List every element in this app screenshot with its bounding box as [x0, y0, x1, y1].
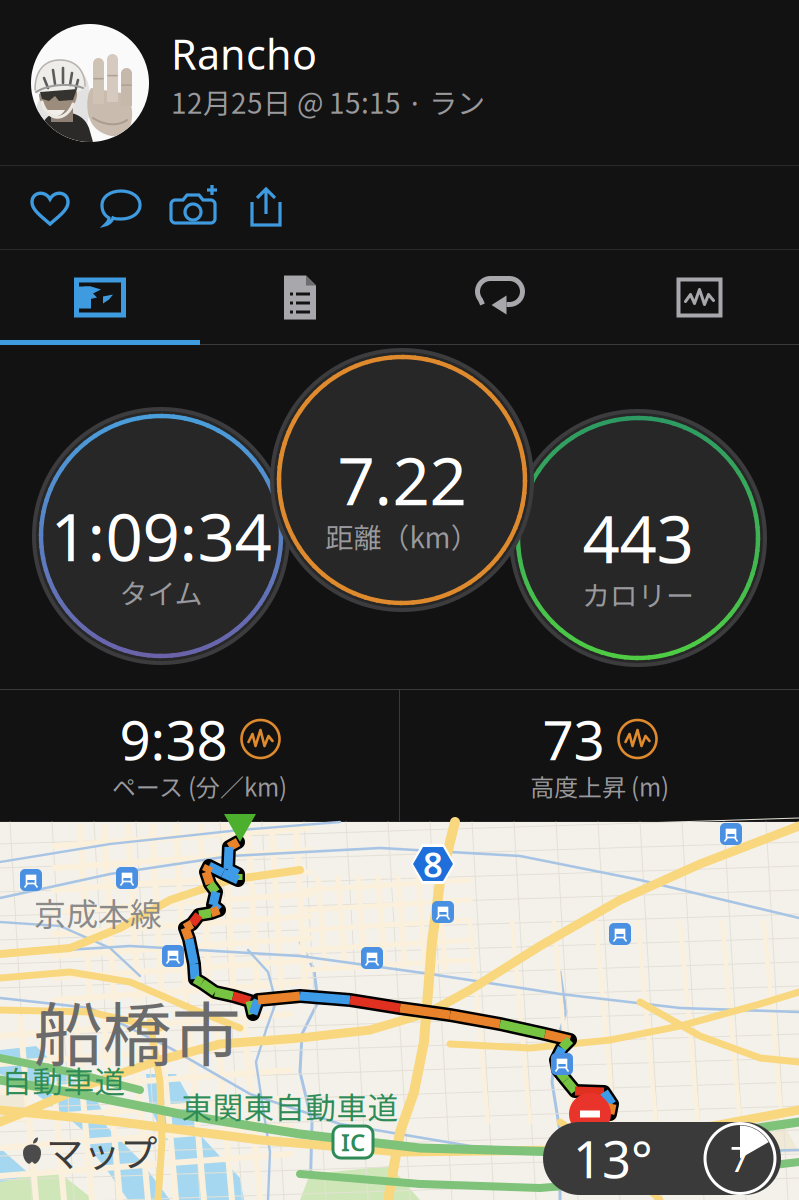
button[interactable]: Comment [86, 166, 158, 250]
staticText: 1:09:34 [50, 493, 271, 579]
staticText: 443 [582, 495, 693, 581]
button[interactable]: Splits [200, 250, 400, 345]
button[interactable]: Map [0, 250, 200, 345]
staticText: 東自動車道 [0, 1058, 125, 1102]
staticText: 8 [423, 841, 443, 887]
staticText: IC [341, 1126, 365, 1158]
button[interactable]: 9:38 [0, 690, 399, 822]
staticText: 12月25日 @ 15:15 · ラン [171, 81, 485, 122]
staticText: 7 [730, 1135, 750, 1181]
staticText: 高度上昇 (m) [530, 769, 669, 803]
staticText: 距離（km） [325, 516, 478, 556]
button[interactable]: Share [230, 166, 302, 250]
staticText: ペース (分／km) [112, 769, 287, 803]
button[interactable]: Laps [400, 250, 600, 345]
staticText: 東関東自動車道 [181, 1084, 398, 1128]
button[interactable]: Analysis [600, 250, 799, 345]
staticText: カロリー [582, 574, 694, 614]
staticText: 13° [573, 1125, 653, 1192]
staticText: 船橋市 [33, 980, 240, 1080]
staticText: 京成本線 [34, 889, 162, 935]
staticText: タイム [119, 572, 202, 612]
button[interactable]: 73 [400, 690, 799, 822]
staticText: Rancho [171, 26, 317, 81]
staticText: 9:38 [119, 703, 227, 775]
staticText: 73 [542, 703, 604, 775]
staticText: 7.22 [337, 437, 466, 523]
staticText: マップ [46, 1124, 157, 1178]
button[interactable]: Like [14, 166, 86, 250]
button[interactable]: Weather [543, 1122, 799, 1200]
button[interactable]: Add photo [158, 166, 230, 250]
